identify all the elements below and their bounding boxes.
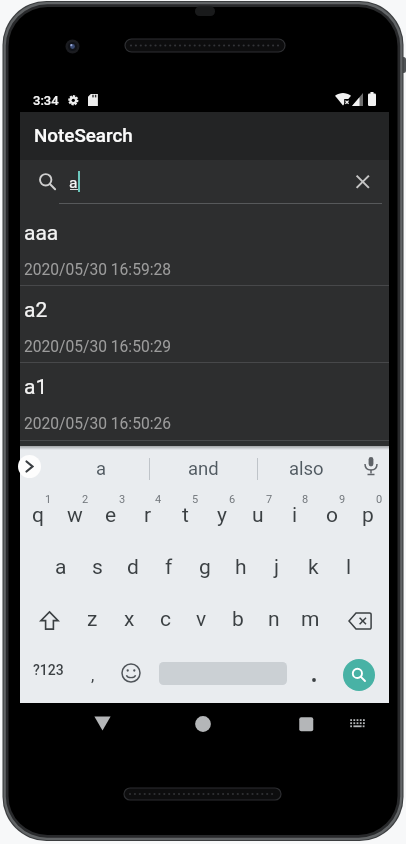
button[interactable]: x (105, 597, 153, 641)
staticText: 2020/05/30 16:50:29 (24, 338, 171, 356)
staticText: h (235, 555, 247, 580)
staticText: m (301, 607, 320, 632)
staticText: 9 (339, 493, 346, 506)
staticText: j (274, 555, 280, 580)
staticText: d (127, 555, 139, 580)
button[interactable] (295, 648, 331, 695)
button[interactable]: m (286, 597, 334, 641)
staticText: c (160, 607, 171, 632)
button[interactable]: n (250, 597, 298, 641)
button[interactable]: i (271, 493, 319, 537)
staticText: x (124, 607, 135, 632)
staticText: 7 (266, 493, 273, 506)
staticText: k (308, 555, 319, 580)
staticText: o (326, 503, 338, 528)
staticText: b (232, 607, 244, 632)
staticText: a1 (24, 375, 48, 400)
button[interactable]: l (325, 545, 373, 589)
staticText: z (87, 607, 98, 632)
staticText: f (165, 555, 173, 580)
staticText: 2020/05/30 16:50:26 (24, 415, 171, 433)
button[interactable] (352, 446, 389, 486)
staticText: v (196, 607, 207, 632)
button[interactable] (340, 597, 380, 644)
staticText: n (268, 607, 280, 632)
staticText: i (292, 503, 298, 528)
staticText: NoteSearch (34, 125, 133, 147)
staticText: 1 (45, 493, 52, 506)
button[interactable]: e (87, 493, 135, 537)
button[interactable] (179, 700, 227, 748)
staticText: a2 (24, 298, 48, 323)
button[interactable] (78, 699, 126, 747)
button[interactable]: v (177, 597, 225, 641)
staticText: , (91, 665, 95, 685)
button[interactable]: d (109, 545, 157, 589)
staticText: 0 (376, 493, 383, 506)
button[interactable] (76, 648, 112, 695)
button[interactable] (345, 164, 381, 200)
button[interactable] (340, 705, 374, 743)
staticText: 3:34 (33, 93, 59, 108)
button[interactable]: p (344, 493, 392, 537)
button[interactable]: f (145, 545, 193, 589)
button[interactable]: r (124, 493, 172, 537)
staticText: 5 (192, 493, 199, 506)
button[interactable]: s (73, 545, 121, 589)
button[interactable]: ?123 (24, 648, 72, 692)
staticText: l (346, 555, 352, 580)
staticText: u (252, 503, 264, 528)
button[interactable] (29, 597, 69, 644)
staticText: g (199, 555, 211, 580)
staticText: q (32, 503, 44, 528)
button[interactable] (343, 659, 375, 691)
button[interactable]: a (37, 545, 85, 589)
button[interactable]: a (56, 449, 146, 489)
button[interactable]: also (262, 449, 351, 489)
staticText: a (96, 458, 107, 480)
button[interactable]: and (146, 449, 260, 489)
staticText: 2020/05/30 16:59:28 (24, 261, 171, 279)
button[interactable] (282, 700, 330, 748)
staticText: aaa (24, 221, 59, 246)
staticText: and (188, 458, 219, 480)
staticText: 4 (155, 493, 162, 506)
button[interactable]: g (181, 545, 229, 589)
button[interactable]: h (217, 545, 265, 589)
button[interactable]: y (198, 493, 246, 537)
button[interactable]: u (234, 493, 282, 537)
staticText: 3 (119, 493, 126, 506)
button[interactable]: j (253, 545, 301, 589)
staticText: p (362, 503, 374, 528)
button[interactable] (20, 285, 389, 362)
staticText: ?123 (33, 662, 64, 678)
button[interactable]: c (141, 597, 189, 641)
staticText: 6 (229, 493, 236, 506)
button[interactable]: w (51, 493, 99, 537)
button[interactable] (20, 362, 389, 439)
button[interactable]: o (308, 493, 356, 537)
staticText: a (55, 555, 67, 580)
button[interactable]: q (14, 493, 62, 537)
staticText: a (69, 174, 78, 192)
staticText: t (182, 503, 189, 528)
staticText: y (217, 503, 227, 528)
button[interactable] (20, 160, 389, 207)
staticText: e (105, 503, 117, 528)
button[interactable] (113, 649, 149, 696)
button[interactable]: k (289, 545, 337, 589)
staticText: 8 (302, 493, 309, 506)
button[interactable]: t (161, 493, 209, 537)
button[interactable]: b (214, 597, 262, 641)
staticText: also (289, 458, 324, 480)
staticText: r (144, 503, 152, 528)
button[interactable]: z (68, 597, 116, 641)
staticText: 2 (82, 493, 89, 506)
button[interactable] (20, 208, 389, 285)
staticText: w (67, 503, 83, 528)
button[interactable] (18, 455, 41, 478)
staticText: s (92, 555, 103, 580)
